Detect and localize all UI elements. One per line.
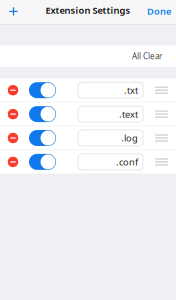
button[interactable]: Enable .conf [26,150,56,174]
button[interactable]: .conf [78,154,143,170]
button[interactable]: Reorder .conf [148,150,176,174]
button[interactable]: Reorder .txt [148,78,176,102]
button[interactable]: Remove .txt [0,78,26,102]
button[interactable]: .text [78,106,143,122]
button[interactable]: .log [78,130,143,146]
button[interactable]: All Clear [0,45,176,67]
button[interactable]: .txt [78,82,143,98]
button[interactable]: Remove .conf [0,150,26,174]
button[interactable]: Reorder .text [148,102,176,126]
button[interactable]: Enable .text [26,102,56,126]
button[interactable]: Remove .log [0,126,26,150]
button[interactable]: Remove .text [0,102,26,126]
button[interactable]: Reorder .log [148,126,176,150]
staticText: All Clear [132,51,162,61]
staticText: .conf [116,156,138,168]
button[interactable]: Enable .txt [26,78,56,102]
staticText: .txt [124,84,138,96]
button[interactable]: Enable .log [26,126,56,150]
staticText: Done [147,5,171,17]
button[interactable]: Done [147,0,176,24]
staticText: Extension Settings [45,4,130,16]
staticText: .log [121,132,138,144]
button[interactable]: Add extension [0,0,27,24]
staticText: .text [119,108,138,120]
